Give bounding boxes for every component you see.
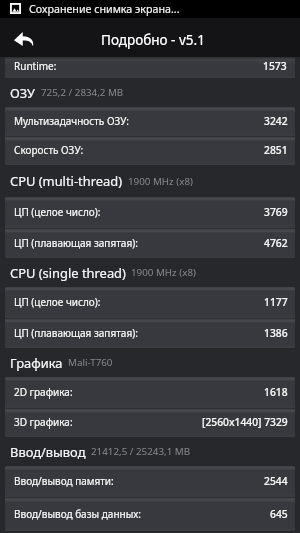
staticText: ЦП (плавающая запятая): — [14, 326, 138, 340]
button[interactable]: Runtime: — [5, 57, 295, 78]
staticText: [2560x1440] 7329 — [202, 415, 288, 429]
staticText: Ввод/вывод базы данных: — [14, 507, 142, 521]
staticText: CPU (multi-thread) — [10, 172, 123, 190]
button[interactable]: 2D графика: — [5, 377, 295, 408]
staticText: Подробно - v5.1 — [101, 31, 205, 49]
button[interactable]: ЦП (целое число): — [5, 197, 295, 228]
staticText: ОЗУ — [10, 84, 36, 102]
button[interactable]: Скорость ОЗУ: — [5, 137, 295, 165]
button[interactable]: ЦП (плавающая запятая): — [5, 319, 295, 348]
staticText: Мультизадачность ОЗУ: — [14, 114, 129, 128]
staticText: 2D графика: — [14, 385, 73, 399]
button[interactable]: Мультизадачность ОЗУ: — [5, 107, 295, 136]
staticText: Графика — [10, 354, 63, 372]
staticText: 1573 — [263, 59, 287, 73]
staticText: Runtime: — [14, 59, 57, 73]
staticText: Сохранение снимка экрана... — [29, 2, 180, 17]
staticText: 3D графика: — [14, 415, 73, 429]
button[interactable]: 3D графика: — [5, 409, 295, 437]
staticText: Ввод/вывод памяти: — [14, 474, 114, 488]
staticText: 645 — [270, 507, 288, 521]
staticText: 4762 — [264, 236, 288, 250]
staticText: Mali-T760 — [68, 356, 113, 369]
staticText: 2544 — [264, 474, 288, 488]
staticText: 725,2 / 2834,2 MB — [41, 86, 124, 99]
staticText: 2851 — [264, 143, 288, 157]
button[interactable]: ЦП (целое число): — [5, 287, 295, 318]
staticText: ЦП (целое число): — [14, 205, 101, 219]
staticText: 3242 — [264, 114, 288, 128]
staticText: CPU (single thread) — [10, 264, 126, 282]
button[interactable]: Back — [0, 18, 46, 57]
staticText: Ввод/вывод — [10, 443, 86, 461]
staticText: Скорость ОЗУ: — [14, 143, 84, 157]
staticText: 1177 — [264, 295, 288, 309]
button[interactable]: Ввод/вывод памяти: — [5, 466, 295, 497]
staticText: 21412,5 / 25243,1 MB — [91, 445, 191, 458]
button[interactable]: ЦП (плавающая запятая): — [5, 229, 295, 258]
staticText: 1386 — [264, 326, 288, 340]
staticText: 1900 MHz (x8) — [131, 266, 196, 279]
staticText: 3769 — [264, 205, 288, 219]
button[interactable]: Ввод/вывод базы данных: — [5, 498, 295, 531]
staticText: ЦП (плавающая запятая): — [14, 236, 138, 250]
staticText: 1900 MHz (x8) — [128, 175, 193, 188]
staticText: ЦП (целое число): — [14, 295, 101, 309]
staticText: 1618 — [264, 385, 288, 399]
